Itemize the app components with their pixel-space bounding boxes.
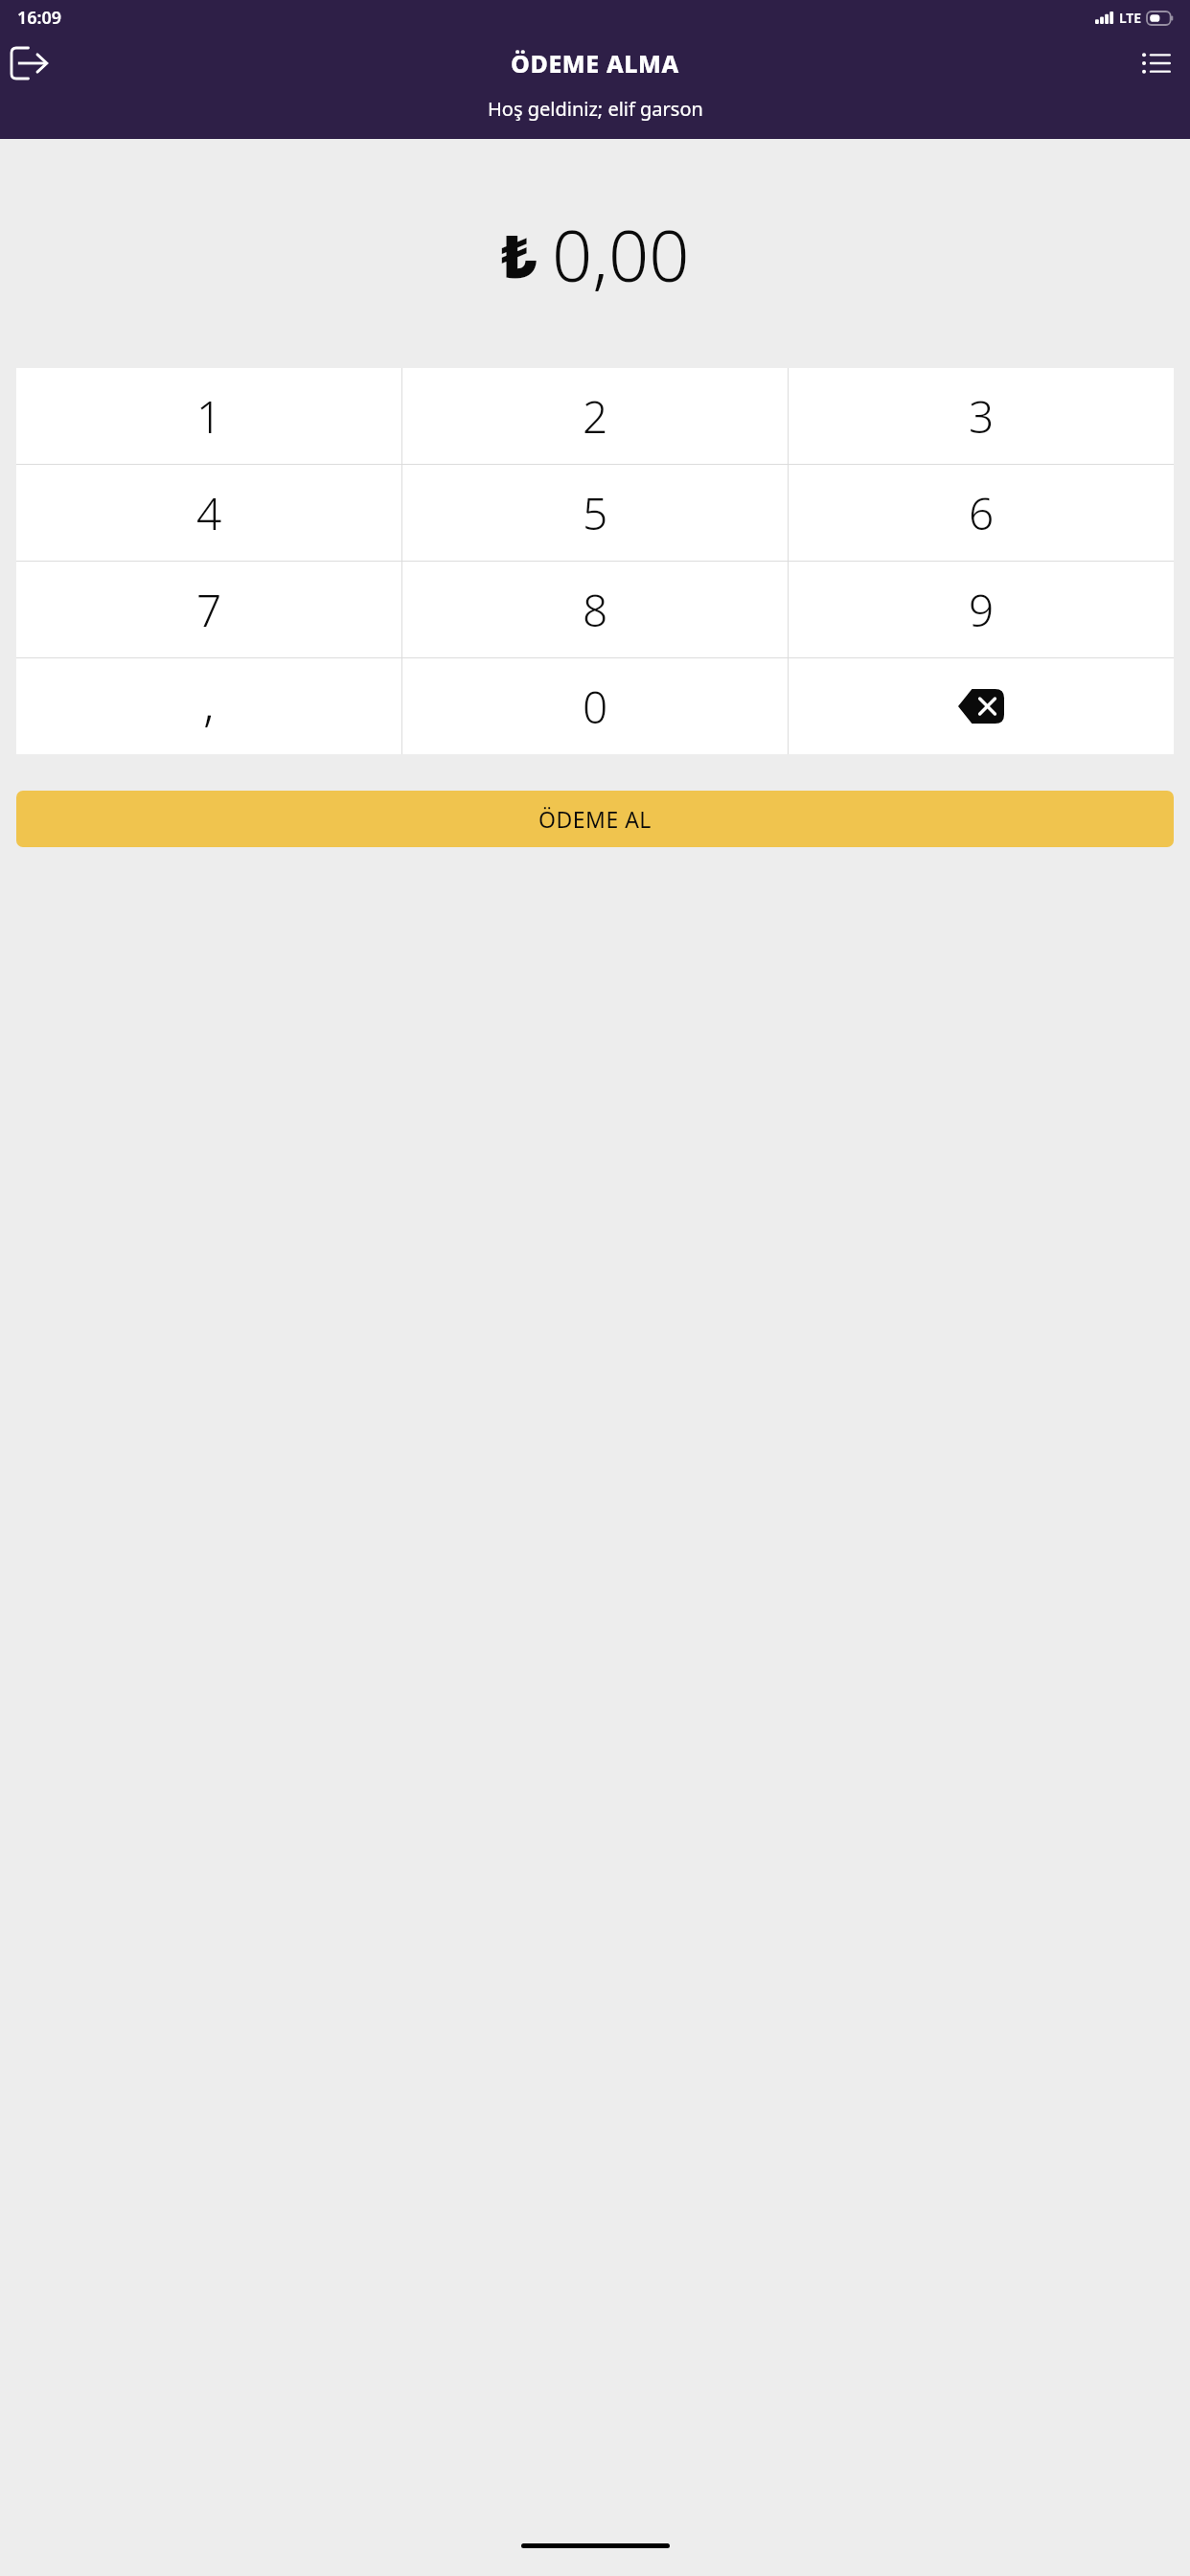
staticText: 1: [196, 386, 222, 447]
staticText: 2: [583, 386, 608, 447]
staticText: LTE: [1119, 9, 1142, 27]
button[interactable]: 2: [402, 368, 788, 464]
button[interactable]: 3: [789, 368, 1174, 464]
staticText: 16:09: [17, 6, 62, 30]
staticText: 8: [583, 580, 608, 640]
button[interactable]: Cikis yap: [4, 37, 56, 89]
button[interactable]: 0: [402, 658, 788, 754]
button[interactable]: ,: [16, 658, 401, 754]
button[interactable]: ÖDEME AL: [16, 791, 1174, 847]
button[interactable]: 7: [16, 562, 401, 657]
staticText: ₺: [501, 215, 537, 295]
staticText: ÖDEME ALMA: [511, 47, 679, 80]
button[interactable]: 5: [402, 465, 788, 561]
button[interactable]: Sil: [789, 658, 1174, 754]
button[interactable]: 6: [789, 465, 1174, 561]
button[interactable]: Menu: [1131, 37, 1182, 89]
button[interactable]: 4: [16, 465, 401, 561]
staticText: Hoş geldiniz; elif garson: [488, 96, 703, 122]
button[interactable]: 9: [789, 562, 1174, 657]
staticText: ,: [203, 667, 215, 735]
staticText: ÖDEME AL: [538, 804, 652, 834]
staticText: 7: [196, 580, 222, 640]
staticText: 6: [969, 483, 995, 543]
staticText: 0,00: [552, 206, 690, 303]
staticText: 0: [583, 677, 608, 737]
button[interactable]: 1: [16, 368, 401, 464]
staticText: 3: [969, 386, 995, 447]
staticText: 9: [969, 580, 995, 640]
button[interactable]: 8: [402, 562, 788, 657]
staticText: 5: [583, 483, 608, 543]
staticText: 4: [196, 483, 222, 543]
